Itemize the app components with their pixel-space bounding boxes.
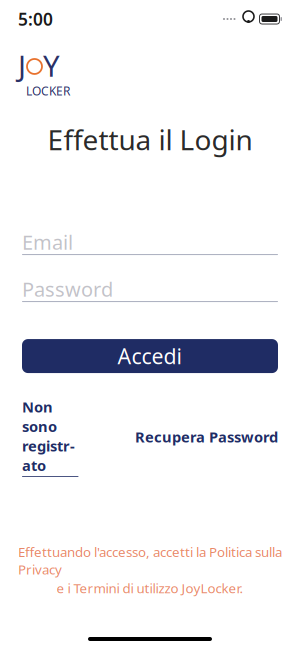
button[interactable]: Recupera Password [135, 427, 278, 447]
button[interactable]: Accedi [22, 339, 278, 373]
button[interactable]: Email [22, 230, 278, 255]
staticText: Accedi [117, 342, 182, 370]
staticText: Y [43, 46, 60, 85]
staticText: Non sono registrato [22, 397, 75, 475]
staticText: e i Termini di utilizzo JoyLocker. [56, 579, 243, 597]
staticText: Effettuando l'accesso, accetti la Politi… [18, 543, 282, 578]
staticText: Effettua il Login [47, 121, 252, 158]
staticText: J [18, 46, 26, 85]
staticText: Email [22, 229, 73, 255]
staticText: Password [22, 276, 113, 302]
staticText: 5:00 [18, 7, 53, 30]
staticText: Recupera Password [135, 427, 278, 447]
button[interactable]: Non sono registrato [22, 397, 78, 477]
button[interactable]: Password [22, 277, 278, 302]
staticText: LOCKER [26, 83, 70, 99]
